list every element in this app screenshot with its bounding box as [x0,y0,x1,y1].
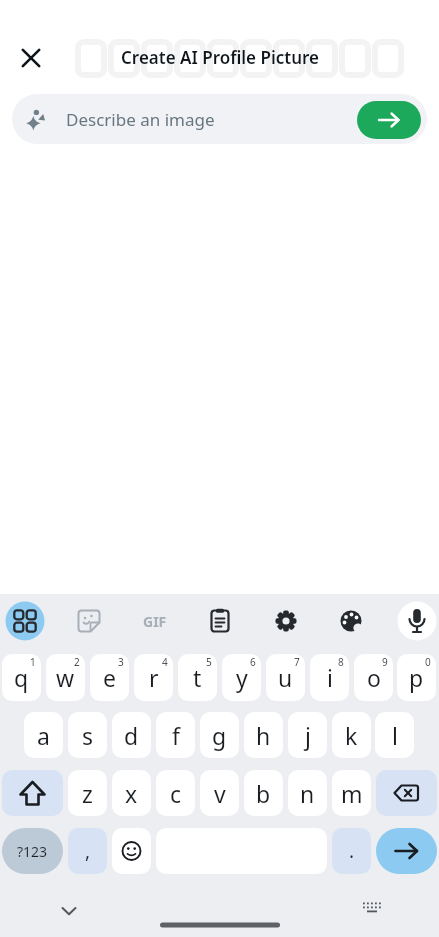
button[interactable] [353,889,391,927]
button[interactable] [357,101,421,139]
button[interactable] [198,599,242,643]
button[interactable] [2,770,63,816]
staticText: Create AI Profile Picture [121,46,319,69]
staticText: 1 [30,655,36,669]
staticText: ?123 [17,842,48,861]
button[interactable]: i [310,654,349,701]
button[interactable]: e [90,654,129,701]
staticText: j [305,720,311,751]
button[interactable] [264,599,308,643]
button[interactable]: k [332,712,371,758]
button[interactable] [376,828,437,874]
button[interactable]: d [112,712,151,758]
button[interactable]: y [222,654,261,701]
button[interactable]: a [24,712,63,758]
staticText: b [256,778,271,809]
button[interactable]: p [397,654,436,701]
staticText: v [214,778,226,809]
staticText: n [300,778,315,809]
staticText: x [125,778,138,809]
button[interactable]: g [200,712,239,758]
staticText: k [345,720,358,751]
staticText: 8 [338,655,344,669]
staticText: 2 [74,655,80,669]
staticText: 4 [162,655,168,669]
button[interactable]: q [2,654,41,701]
button[interactable]: f [156,712,195,758]
button[interactable]: z [68,770,107,816]
button[interactable] [376,770,437,816]
staticText: a [37,720,50,751]
staticText: f [172,720,180,751]
button[interactable]: l [375,712,414,758]
button[interactable]: t [178,654,217,701]
button[interactable]: s [68,712,107,758]
staticText: h [256,720,271,751]
staticText: , [85,838,91,864]
button[interactable] [67,599,111,643]
button[interactable] [3,599,47,643]
staticText: . [349,838,355,864]
button[interactable]: w [46,654,85,701]
staticText: i [327,662,333,693]
staticText: 0 [425,655,431,669]
button[interactable]: . [332,828,371,874]
staticText: z [82,778,93,809]
staticText: 9 [382,655,388,669]
button[interactable] [50,892,88,930]
button[interactable]: , [68,828,107,874]
button[interactable]: h [244,712,283,758]
staticText: d [124,720,139,751]
staticText: 3 [118,655,124,669]
staticText: y [236,662,248,693]
button[interactable]: GIF [133,599,177,643]
button[interactable] [329,599,373,643]
button[interactable]: b [244,770,283,816]
button[interactable]: j [288,712,327,758]
button[interactable]: u [266,654,305,701]
staticText: GIF [143,612,167,631]
staticText: 5 [206,655,212,669]
staticText: t [193,662,202,693]
staticText: q [14,662,29,693]
staticText: Describe an image [66,108,215,131]
button[interactable]: x [112,770,151,816]
staticText: g [212,720,227,751]
staticText: s [82,720,94,751]
button[interactable]: n [288,770,327,816]
button[interactable]: v [200,770,239,816]
button[interactable] [112,828,151,874]
button[interactable]: m [332,770,371,816]
staticText: r [149,662,159,693]
button[interactable]: r [134,654,173,701]
staticText: c [170,778,182,809]
staticText: 7 [294,655,300,669]
button[interactable]: ?123 [2,828,63,874]
staticText: 6 [250,655,256,669]
staticText: m [341,778,363,809]
staticText: e [103,662,116,693]
button[interactable]: c [156,770,195,816]
staticText: u [278,662,293,693]
button[interactable] [12,39,50,77]
staticText: l [392,720,398,751]
staticText: p [409,662,424,693]
button[interactable] [395,599,439,643]
button[interactable]: Describe an image [12,94,427,144]
staticText: w [56,662,75,693]
button[interactable]: o [354,654,393,701]
staticText: o [367,662,381,693]
